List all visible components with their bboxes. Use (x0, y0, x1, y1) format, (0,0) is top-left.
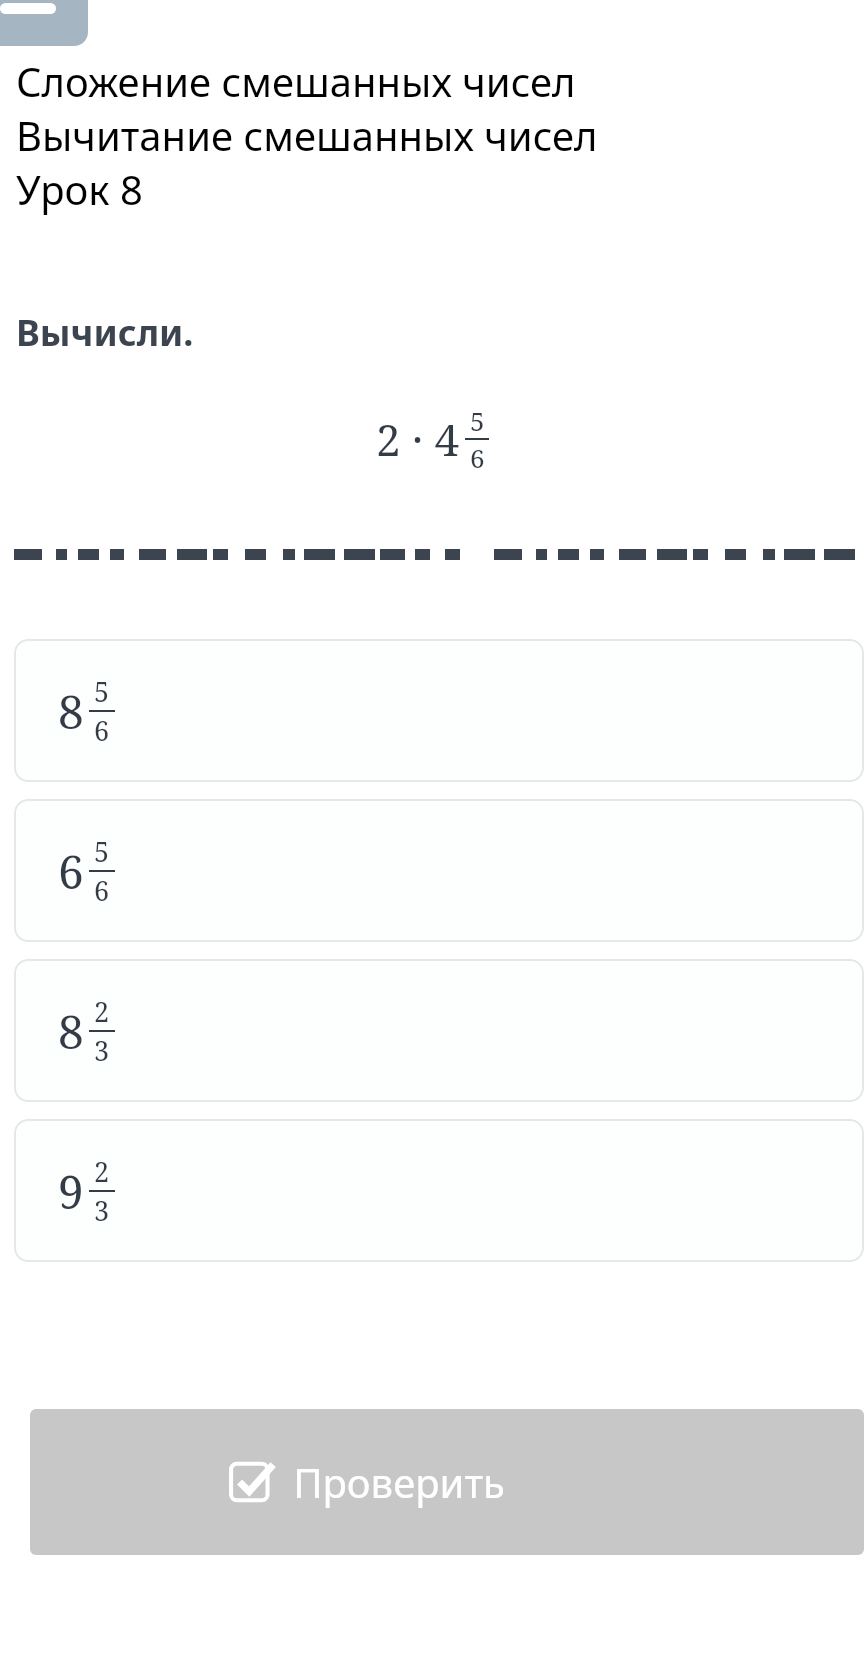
staticText: 2 · 4 (376, 409, 460, 469)
staticText: 5 (94, 673, 110, 710)
button[interactable]: Проверить (30, 1409, 864, 1555)
button[interactable]: 8 (14, 639, 864, 782)
staticText: 6 (94, 872, 110, 909)
staticText: Проверить (293, 1455, 505, 1509)
staticText: 5 (470, 403, 485, 438)
staticText: Сложение смешанных чисел (16, 54, 576, 108)
staticText: 2 (94, 1153, 110, 1190)
button[interactable]: 6 (14, 799, 864, 942)
staticText: 6 (470, 440, 485, 475)
staticText: 9 (58, 1160, 84, 1223)
staticText: Урок 8 (16, 162, 143, 216)
staticText: 8 (58, 680, 84, 743)
staticText: 5 (94, 833, 110, 870)
staticText: Вычитание смешанных чисел (16, 108, 598, 162)
staticText: Вычисли. (16, 308, 194, 357)
staticText: 6 (94, 712, 110, 749)
staticText: 6 (58, 840, 84, 903)
button[interactable]: 9 (14, 1119, 864, 1262)
button[interactable]: Menu (0, 0, 88, 46)
staticText: 8 (58, 1000, 84, 1063)
staticText: 3 (94, 1032, 110, 1069)
staticText: 3 (94, 1192, 110, 1229)
button[interactable]: 8 (14, 959, 864, 1102)
staticText: 2 (94, 993, 110, 1030)
